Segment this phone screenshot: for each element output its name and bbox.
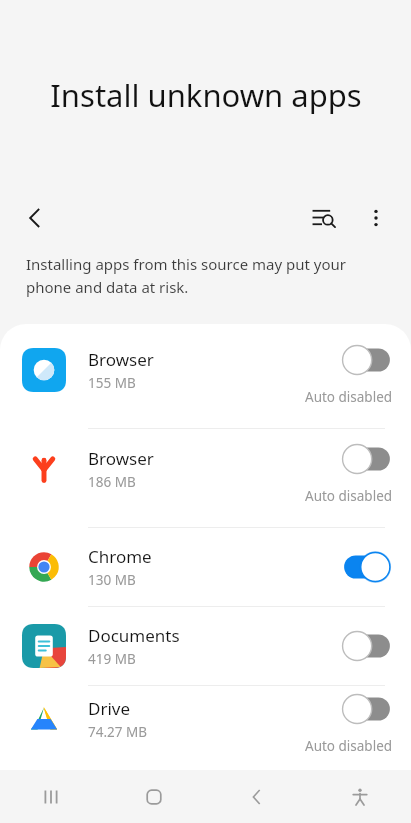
- staticText: 419 MB: [88, 650, 136, 668]
- button[interactable]: Home: [102, 770, 205, 823]
- button[interactable]: Toggle off: [341, 630, 393, 662]
- staticText: 186 MB: [88, 473, 136, 491]
- button[interactable]: Toggle off: [341, 344, 393, 376]
- staticText: Browser: [88, 348, 154, 371]
- button[interactable]: Documents: [0, 607, 411, 685]
- staticText: Installing apps from this source may put…: [26, 254, 385, 297]
- staticText: Documents: [88, 624, 180, 647]
- staticText: Install unknown apps: [50, 74, 362, 116]
- button[interactable]: Toggle on: [341, 551, 393, 583]
- staticText: Chrome: [88, 545, 152, 568]
- staticText: Drive: [88, 697, 131, 720]
- staticText: Auto disabled: [305, 487, 393, 505]
- button[interactable]: Browser: [0, 330, 411, 428]
- staticText: Auto disabled: [305, 737, 393, 755]
- button[interactable]: Recents: [0, 770, 102, 823]
- button[interactable]: Chrome: [0, 528, 411, 606]
- button[interactable]: Back: [205, 770, 308, 823]
- button[interactable]: Drive: [0, 686, 411, 770]
- staticText: 130 MB: [88, 571, 136, 589]
- button[interactable]: Browser: [0, 429, 411, 527]
- staticText: Auto disabled: [305, 388, 393, 406]
- staticText: 74.27 MB: [88, 723, 148, 741]
- button[interactable]: Toggle off: [341, 443, 393, 475]
- button[interactable]: Toggle off: [341, 693, 393, 725]
- staticText: 155 MB: [88, 374, 136, 392]
- button[interactable]: Accessibility: [308, 770, 411, 823]
- staticText: Browser: [88, 447, 154, 470]
- button[interactable]: Back: [11, 194, 59, 242]
- button[interactable]: Search: [300, 194, 348, 242]
- button[interactable]: More options: [352, 194, 400, 242]
